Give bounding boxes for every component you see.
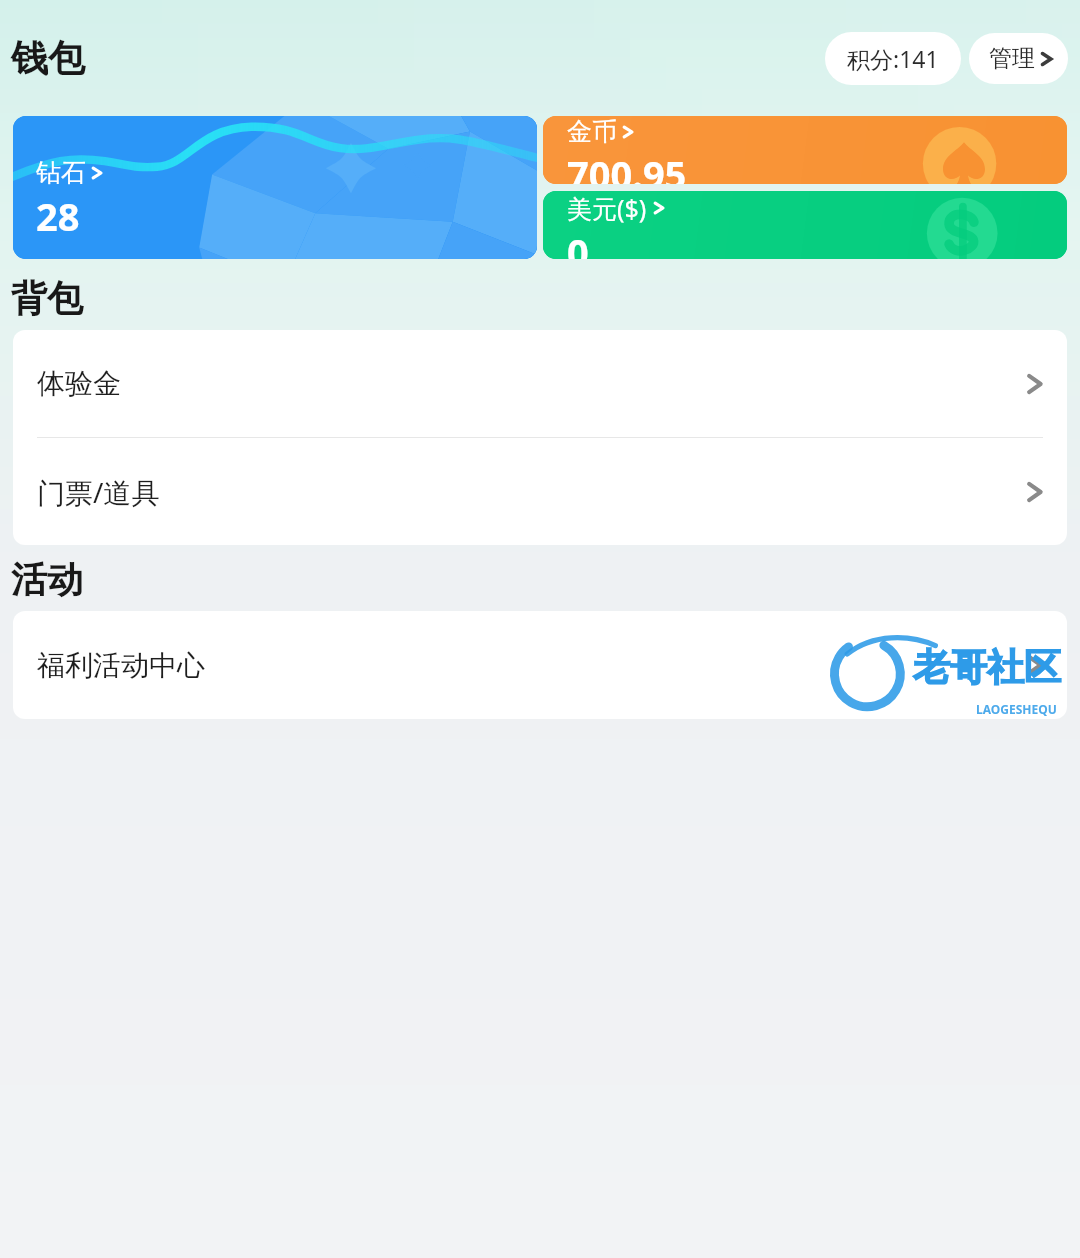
staticText: 老哥社区 [913,644,1061,691]
staticText: 钻石 [36,157,86,188]
button[interactable]: 金币 [543,116,1067,184]
staticText: 门票/道具 [37,473,160,511]
button[interactable]: 积分:141 [825,32,961,85]
staticText: LAOGESHEQU [976,701,1057,717]
staticText: 28 [36,190,80,242]
button[interactable]: 管理 [969,33,1068,84]
staticText: 钱包 [11,35,85,82]
staticText: 背包 [11,276,83,321]
other: 老哥社区 watermark [831,624,1063,718]
staticText: 700.95 [567,148,687,184]
button[interactable]: 体验金 [13,330,1067,437]
staticText: 管理 [989,44,1035,73]
staticText: 积分:141 [847,43,939,74]
staticText: 福利活动中心 [37,648,205,683]
staticText: 0 [567,226,589,259]
button[interactable]: 福利活动中心 [13,611,1067,719]
button[interactable]: 美元($) [543,191,1067,259]
button[interactable]: 钻石 [13,116,537,259]
staticText: 活动 [11,557,83,602]
button[interactable]: 门票/道具 [13,438,1067,545]
staticText: 金币 [567,116,617,147]
staticText: 美元($) [567,191,647,225]
staticText: 体验金 [37,366,121,401]
